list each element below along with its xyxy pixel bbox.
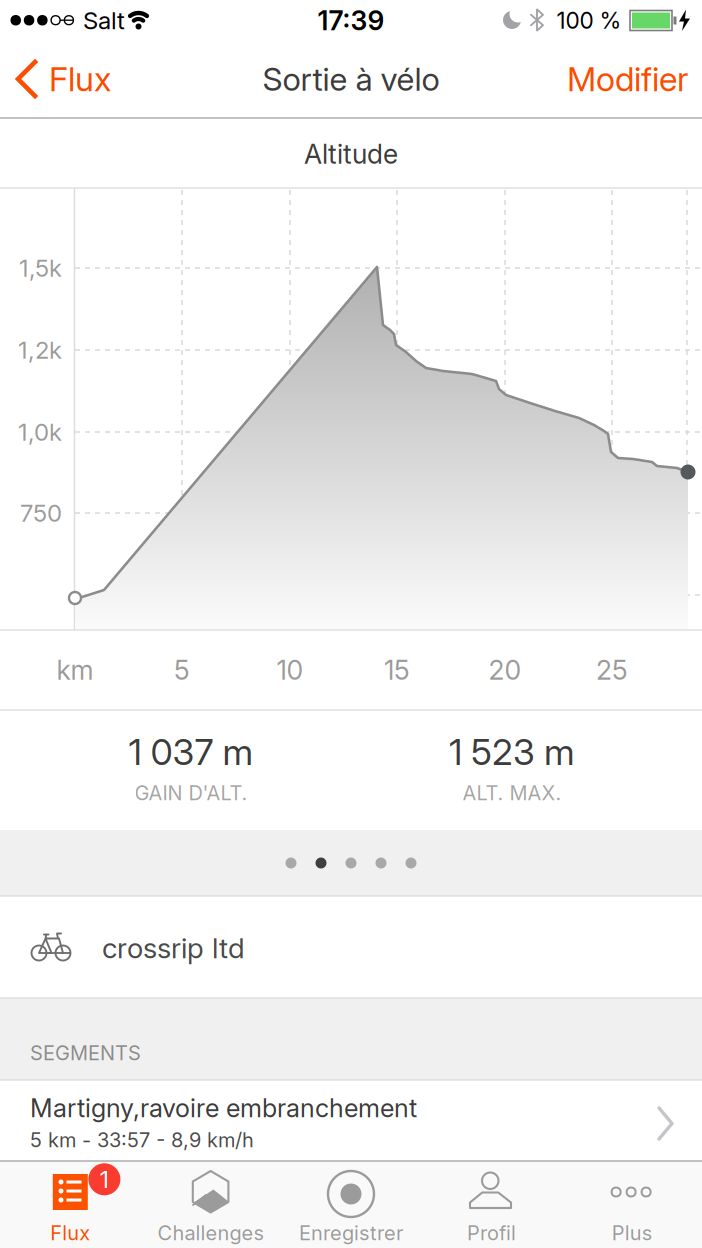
staticText: SEGMENTS: [30, 1041, 141, 1065]
button[interactable]: Back: [15, 49, 145, 109]
staticText: crossrip ltd: [102, 931, 245, 964]
staticText: 750: [20, 499, 62, 527]
staticText: ALT. MAX.: [462, 781, 561, 805]
button[interactable]: Plus: [562, 1161, 702, 1248]
staticText: Profil: [467, 1221, 516, 1245]
staticText: Challenges: [158, 1221, 264, 1245]
button[interactable]: Challenges: [140, 1161, 281, 1248]
staticText: Flux: [50, 1221, 90, 1245]
staticText: 1 523 m: [449, 731, 575, 773]
staticText: Salt: [83, 6, 125, 35]
staticText: 15: [384, 654, 410, 686]
staticText: 1 037 m: [128, 731, 253, 773]
staticText: Modifier: [567, 59, 688, 99]
staticText: GAIN D'ALT.: [134, 781, 247, 805]
button[interactable]: Modifier: [518, 49, 688, 109]
button[interactable]: Profil: [421, 1161, 562, 1248]
staticText: Enregistrer: [299, 1221, 403, 1245]
staticText: 5: [174, 654, 190, 686]
staticText: Flux: [49, 59, 111, 99]
staticText: km: [56, 654, 93, 686]
staticText: 1,0k: [18, 418, 62, 446]
staticText: 10: [276, 654, 303, 686]
staticText: 1,5k: [19, 254, 62, 282]
button[interactable]: Martigny,ravoire embranchement: [0, 1080, 702, 1161]
staticText: 1,2k: [18, 336, 62, 364]
staticText: Sortie à vélo: [262, 60, 439, 98]
staticText: 100 %: [556, 7, 621, 34]
staticText: 5 km - 33:57 - 8,9 km/h: [30, 1128, 254, 1152]
staticText: 17:39: [317, 5, 384, 36]
staticText: 1: [99, 1165, 109, 1193]
staticText: 25: [596, 654, 628, 686]
staticText: 20: [488, 654, 521, 686]
staticText: Altitude: [304, 138, 398, 170]
button[interactable]: Enregistrer: [281, 1161, 421, 1248]
staticText: Martigny,ravoire embranchement: [30, 1093, 417, 1123]
button[interactable]: Flux: [0, 1161, 140, 1248]
staticText: Plus: [612, 1221, 652, 1245]
